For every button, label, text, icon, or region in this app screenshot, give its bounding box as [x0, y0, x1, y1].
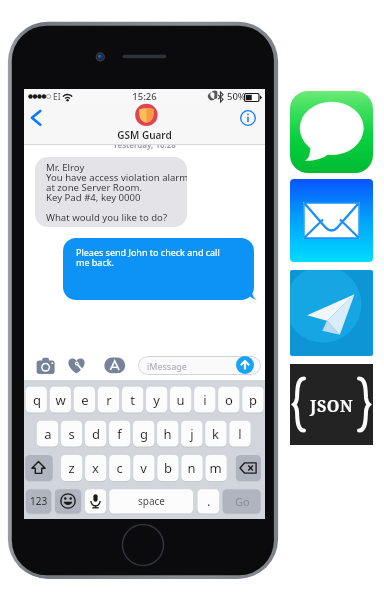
staticText: w: [55, 391, 66, 409]
staticText: n: [187, 459, 196, 477]
button[interactable]: Emoji: [55, 489, 81, 513]
staticText: y: [153, 391, 160, 409]
button[interactable]: iMessage: [138, 356, 261, 375]
staticText: g: [140, 425, 148, 443]
button[interactable]: Dictate: [85, 489, 106, 513]
staticText: i: [203, 391, 207, 409]
button[interactable]: g: [133, 421, 154, 447]
staticText: p: [249, 391, 257, 409]
button[interactable]: Backspace: [236, 455, 261, 481]
button[interactable]: y: [146, 387, 167, 413]
staticText: Go: [235, 494, 250, 509]
staticText: j: [190, 425, 194, 443]
staticText: m: [209, 459, 222, 477]
staticText: .: [207, 492, 211, 510]
staticText: x: [92, 459, 99, 477]
staticText: u: [176, 391, 185, 409]
staticText: GSM Guard: [24, 128, 265, 142]
staticText: k: [212, 425, 219, 443]
button[interactable]: [122, 104, 170, 144]
staticText: EI: [53, 91, 61, 103]
button[interactable]: w: [50, 387, 71, 413]
button[interactable]: .: [198, 489, 220, 513]
staticText: b: [164, 459, 172, 477]
button[interactable]: JSON: [290, 364, 373, 445]
button[interactable]: a: [37, 421, 58, 447]
button[interactable]: o: [218, 387, 239, 413]
staticText: q: [33, 391, 41, 409]
button[interactable]: Camera: [35, 355, 56, 376]
staticText: 123: [30, 494, 48, 508]
staticText: s: [68, 425, 75, 443]
button[interactable]: v: [133, 455, 154, 481]
staticText: f: [117, 425, 122, 443]
staticText: l: [238, 425, 242, 443]
staticText: Pleaes send John to check and call me ba…: [76, 246, 220, 269]
staticText: Mr. Elroy You have access violation alar…: [46, 161, 187, 224]
staticText: 50%: [227, 90, 246, 103]
staticText: iMessage: [147, 360, 187, 372]
staticText: Yesterday, 10:28: [24, 139, 265, 150]
button[interactable]: Digital Touch: [66, 355, 88, 377]
button[interactable]: t: [122, 387, 143, 413]
button[interactable]: u: [170, 387, 191, 413]
button[interactable]: k: [205, 421, 226, 447]
button[interactable]: c: [109, 455, 130, 481]
button[interactable]: z: [61, 455, 82, 481]
button[interactable]: Send: [236, 356, 254, 374]
button[interactable]: m: [205, 455, 226, 481]
staticText: o: [225, 391, 233, 409]
staticText: a: [44, 425, 52, 443]
staticText: r: [106, 391, 112, 409]
button[interactable]: Messages: [290, 91, 373, 173]
button[interactable]: f: [109, 421, 130, 447]
button[interactable]: 123: [26, 489, 52, 513]
button[interactable]: Mr. Elroy You have access violation alar…: [35, 157, 187, 227]
staticText: c: [116, 459, 123, 477]
button[interactable]: b: [157, 455, 178, 481]
staticText: d: [92, 425, 100, 443]
button[interactable]: d: [85, 421, 106, 447]
button[interactable]: q: [26, 387, 47, 413]
button[interactable]: Shift: [25, 455, 52, 481]
button[interactable]: Mail: [290, 179, 373, 262]
button[interactable]: l: [229, 421, 250, 447]
staticText: t: [130, 391, 135, 409]
button[interactable]: Telegram: [290, 270, 373, 356]
staticText: JSON: [310, 395, 354, 417]
button[interactable]: h: [157, 421, 178, 447]
button[interactable]: p: [242, 387, 263, 413]
staticText: e: [81, 391, 89, 409]
staticText: z: [68, 459, 75, 477]
button[interactable]: App Store: [104, 355, 126, 377]
button[interactable]: Details: [236, 106, 260, 130]
button[interactable]: r: [98, 387, 119, 413]
button[interactable]: j: [181, 421, 202, 447]
button[interactable]: space: [109, 489, 193, 513]
staticText: h: [163, 425, 172, 443]
button[interactable]: Go: [223, 489, 261, 513]
staticText: 15:26: [24, 90, 265, 103]
button[interactable]: i: [194, 387, 215, 413]
button[interactable]: Back: [26, 106, 46, 130]
button[interactable]: e: [74, 387, 95, 413]
button[interactable]: x: [85, 455, 106, 481]
button[interactable]: s: [61, 421, 82, 447]
button[interactable]: n: [181, 455, 202, 481]
button[interactable]: Pleaes send John to check and call me ba…: [63, 238, 254, 300]
staticText: v: [140, 459, 147, 477]
staticText: space: [138, 494, 165, 508]
